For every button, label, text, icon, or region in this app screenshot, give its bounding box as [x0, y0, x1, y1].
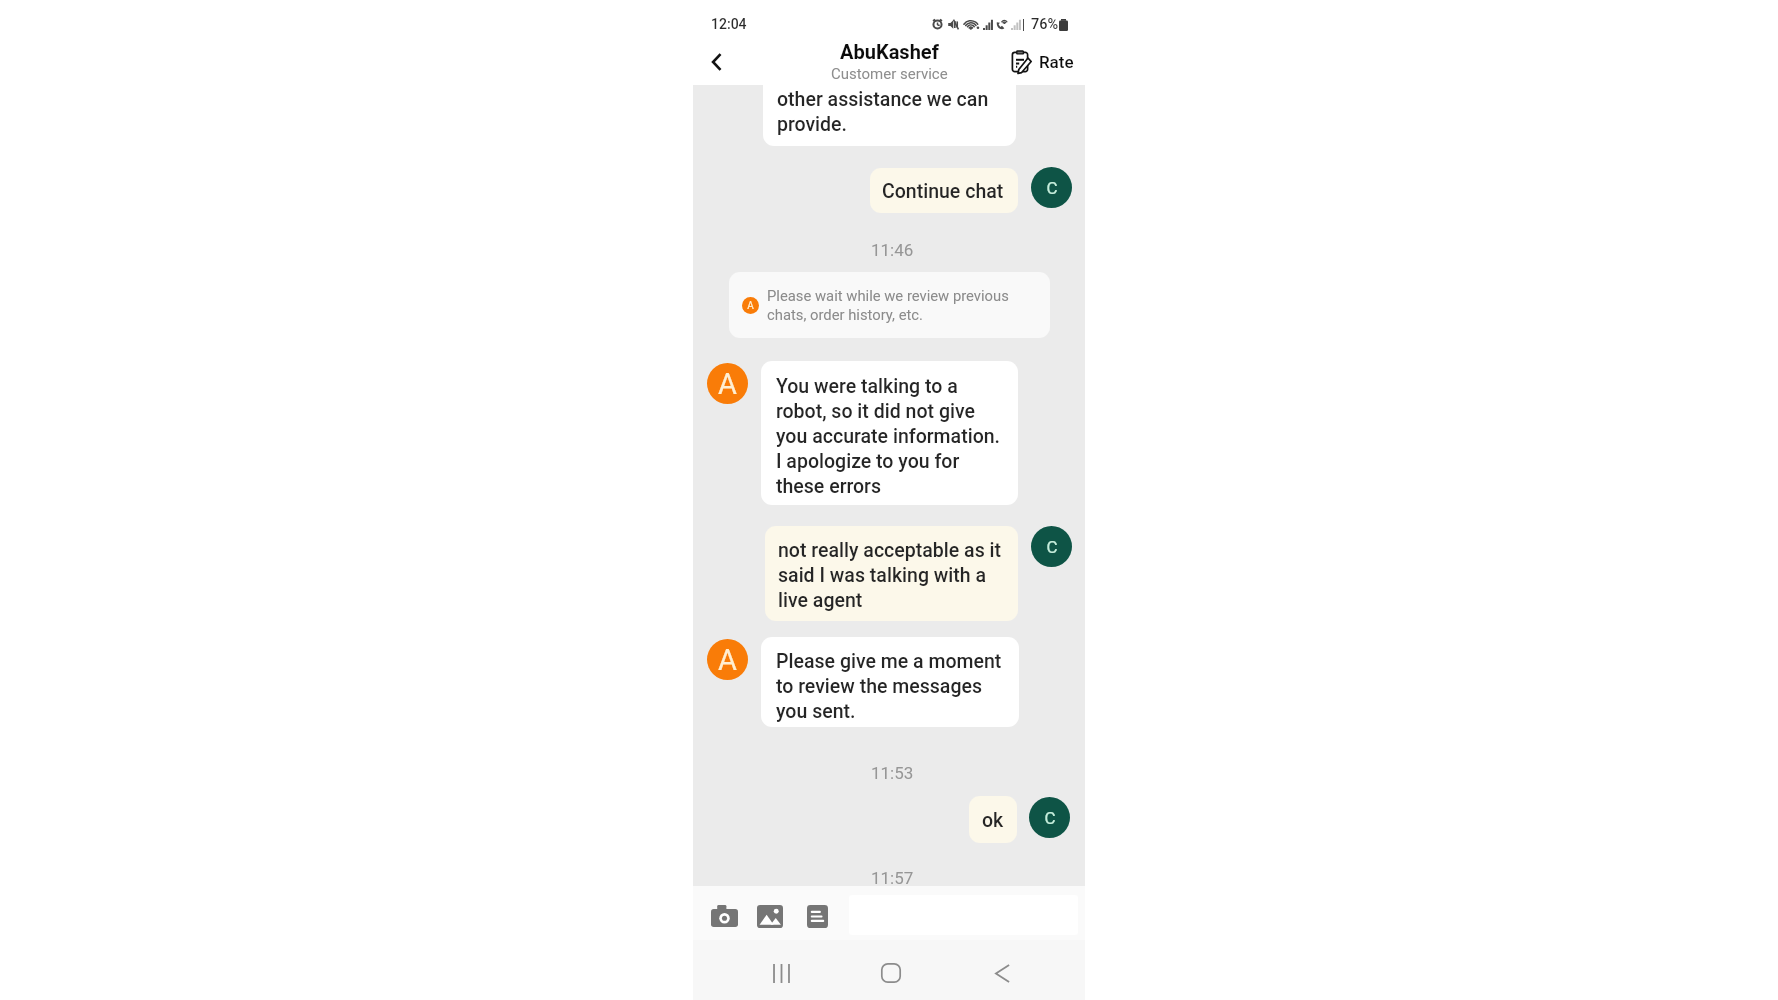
button[interactable]: ok: [969, 796, 1017, 843]
staticText: A: [747, 300, 754, 312]
button[interactable]: Home: [860, 940, 921, 1000]
button[interactable]: Templates: [798, 897, 836, 935]
button[interactable]: other assistance we can provide.: [763, 85, 1016, 146]
staticText: 11:46: [871, 240, 914, 260]
staticText: 11:57: [871, 868, 914, 888]
staticText: Continue chat: [882, 180, 1004, 203]
button[interactable]: Please give me a moment to review the me…: [761, 637, 1019, 727]
button[interactable]: Recents: [751, 940, 812, 1000]
staticText: C: [1044, 808, 1056, 828]
button[interactable]: A: [729, 272, 1050, 338]
button[interactable]: Camera: [705, 897, 743, 935]
button[interactable]: Back: [697, 42, 737, 82]
button[interactable]: You were talking to a robot, so it did n…: [761, 361, 1018, 505]
button[interactable]: Gallery: [751, 897, 789, 935]
staticText: 11:53: [871, 763, 914, 783]
staticText: C: [1046, 178, 1058, 198]
button[interactable]: Rate: [1006, 45, 1085, 79]
staticText: 12:04: [711, 16, 747, 32]
staticText: Customer service: [831, 65, 948, 83]
staticText: A: [718, 643, 737, 677]
staticText: C: [1046, 537, 1058, 557]
staticText: ok: [982, 809, 1004, 832]
button[interactable]: Back: [972, 940, 1033, 1000]
staticText: Please give me a moment to review the me…: [776, 650, 1002, 723]
staticText: 76%: [1031, 16, 1059, 33]
staticText: AbuKashef: [840, 40, 939, 63]
staticText: Please wait while we review previous cha…: [767, 287, 1009, 324]
staticText: not really acceptable as it said I was t…: [778, 539, 1002, 612]
button[interactable]: Continue chat: [870, 168, 1018, 213]
staticText: Rate: [1039, 52, 1074, 72]
staticText: A: [718, 367, 737, 401]
button[interactable]: not really acceptable as it said I was t…: [765, 526, 1018, 621]
staticText: other assistance we can provide.: [777, 88, 989, 136]
staticText: You were talking to a robot, so it did n…: [776, 375, 1001, 498]
